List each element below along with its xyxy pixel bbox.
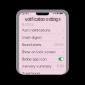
staticText: Push notifications xyxy=(22,28,51,32)
staticText: › xyxy=(63,36,64,39)
staticText: Badge app icon xyxy=(22,57,47,61)
staticText: › xyxy=(63,28,64,32)
staticText: 8:00 xyxy=(57,64,64,68)
button[interactable]: Email digest xyxy=(19,34,66,41)
button[interactable]: Quiet hours xyxy=(19,70,66,77)
staticText: › xyxy=(63,72,64,75)
staticText: Email digest xyxy=(22,35,42,40)
button[interactable]: Show on lock screen xyxy=(19,48,66,56)
staticText: › xyxy=(63,50,64,54)
staticText: Notification Settings xyxy=(24,17,60,22)
staticText: Chime xyxy=(54,43,64,46)
button[interactable]: Delivery summary xyxy=(19,63,66,70)
button[interactable]: Sound alerts xyxy=(19,41,66,48)
staticText: Delivery summary xyxy=(22,64,52,68)
staticText: ALERTS xyxy=(22,23,34,26)
staticText: 9:41 xyxy=(22,11,28,15)
staticText: Quiet hours xyxy=(22,71,41,76)
button[interactable]: Push notifications xyxy=(19,27,66,34)
staticText: Show on lock screen xyxy=(22,50,56,54)
button[interactable]: Badge app icon xyxy=(19,56,66,63)
staticText: Sound alerts xyxy=(22,42,42,47)
